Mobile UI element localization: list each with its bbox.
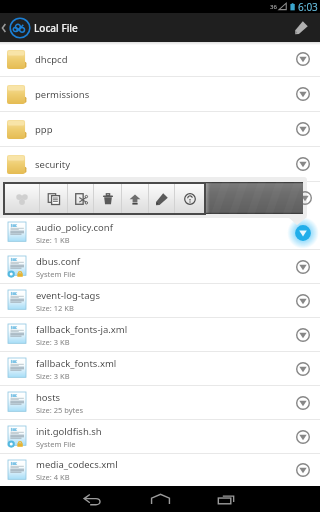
button[interactable]: More options	[286, 112, 320, 146]
button[interactable]: More options	[286, 352, 320, 385]
button[interactable]: Paste	[5, 184, 39, 213]
staticText: media_codecs.xml	[36, 458, 118, 471]
button[interactable]: More options	[286, 216, 320, 249]
button[interactable]: Recent apps	[191, 486, 261, 512]
button[interactable]: More options	[286, 420, 320, 453]
staticText: init.goldfish.sh	[36, 425, 102, 438]
button[interactable]: event-log-tags	[0, 284, 320, 317]
staticText: Size: 3 KB	[36, 371, 70, 381]
button[interactable]: fallback_fonts.xml	[0, 352, 320, 385]
staticText: ppp	[35, 123, 286, 136]
staticText: 36	[270, 3, 277, 11]
button[interactable]: Back	[0, 13, 8, 42]
staticText: hosts	[36, 391, 61, 404]
button[interactable]: More options	[286, 42, 320, 76]
staticText: Local File	[34, 21, 78, 35]
staticText: dhcpcd	[35, 53, 286, 66]
button[interactable]: More options	[286, 386, 320, 419]
button[interactable]: media_codecs.xml	[0, 454, 320, 486]
staticText: security	[35, 158, 286, 171]
button[interactable]: Upload	[122, 184, 148, 213]
staticText: permissions	[35, 88, 286, 101]
staticText: Size: 25 bytes	[36, 405, 84, 415]
button[interactable]: dhcpcd	[0, 42, 320, 76]
staticText: fallback_fonts.xml	[36, 357, 117, 370]
button[interactable]: More options	[286, 318, 320, 351]
button[interactable]: hosts	[0, 386, 320, 419]
button[interactable]: More options	[286, 454, 320, 486]
staticText: Size: 12 KB	[36, 303, 74, 313]
staticText: event-log-tags	[36, 289, 100, 302]
button[interactable]: More options	[286, 77, 320, 111]
button[interactable]: fallback_fonts-ja.xml	[0, 318, 320, 351]
staticText: System File	[36, 269, 76, 279]
button[interactable]: More options	[286, 284, 320, 317]
button[interactable]: audio_policy.conf	[0, 216, 320, 249]
button[interactable]: More options	[286, 147, 320, 181]
button[interactable]: Back	[57, 486, 127, 512]
button[interactable]: Home	[125, 486, 195, 512]
button[interactable]: dbus.conf	[0, 250, 320, 283]
button[interactable]: init.goldfish.sh	[0, 420, 320, 453]
staticText: dbus.conf	[36, 255, 81, 268]
button[interactable]: Cut	[68, 184, 93, 213]
staticText: Size: 4 KB	[36, 472, 70, 482]
button[interactable]: Delete	[94, 184, 121, 213]
staticText: Size: 3 KB	[36, 337, 70, 347]
staticText: System File	[36, 439, 76, 449]
staticText: audio_policy.conf	[36, 221, 113, 234]
button[interactable]: Edit	[284, 13, 318, 42]
button[interactable]: permissions	[0, 77, 320, 111]
button[interactable]: ppp	[0, 112, 320, 146]
staticText: 6:03	[298, 0, 318, 13]
button[interactable]: Copy	[40, 184, 67, 213]
button[interactable]: security	[0, 147, 320, 181]
button[interactable]: More options	[297, 190, 312, 205]
button[interactable]: More options	[286, 250, 320, 283]
staticText: Size: 1 KB	[36, 235, 70, 245]
button[interactable]: Rename	[149, 184, 174, 213]
button[interactable]: Help	[175, 184, 204, 213]
staticText: fallback_fonts-ja.xml	[36, 323, 128, 336]
